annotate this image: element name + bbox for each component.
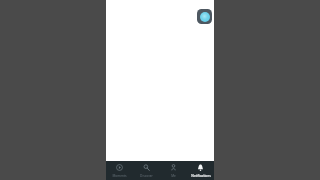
staticText: Notifications — [191, 174, 211, 178]
staticText: Discover — [140, 174, 153, 178]
button[interactable]: Moments — [106, 161, 133, 180]
button[interactable]: Notifications — [187, 161, 214, 180]
button[interactable]: Me — [160, 161, 187, 180]
staticText: Moments — [112, 174, 127, 178]
staticText: Me — [171, 174, 176, 178]
button[interactable]: Profile — [197, 9, 212, 24]
button[interactable]: Discover — [133, 161, 160, 180]
